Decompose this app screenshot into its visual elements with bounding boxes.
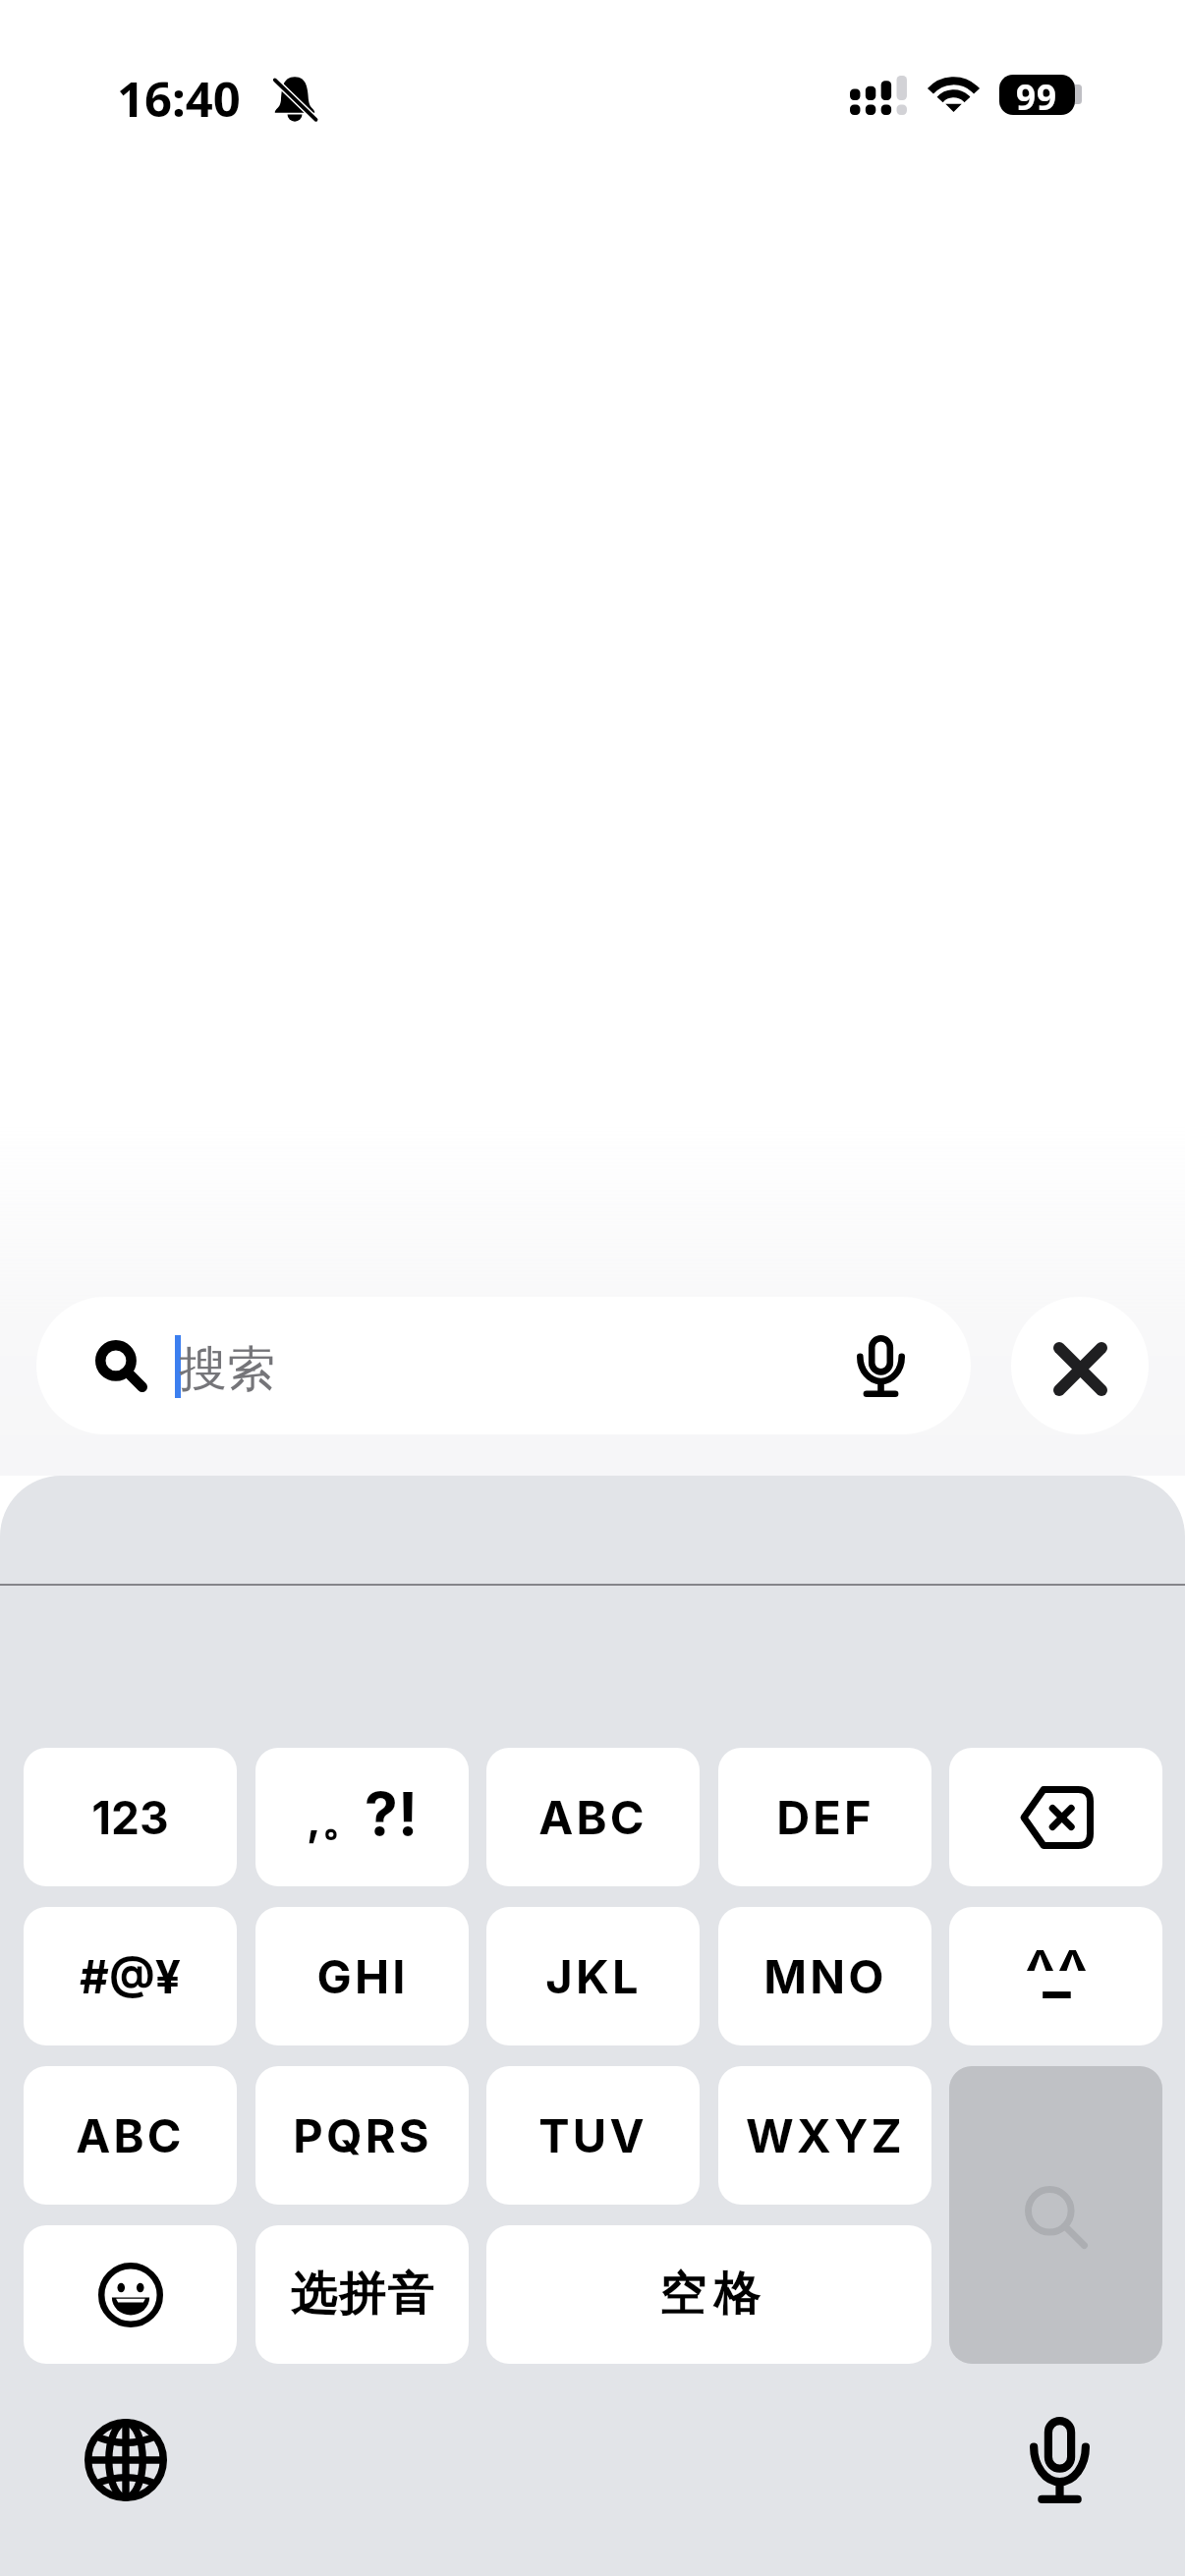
button[interactable]: Voice input <box>996 2397 1122 2523</box>
button[interactable]: PQRS <box>255 2066 469 2205</box>
button[interactable]: GHI <box>255 1907 469 2045</box>
staticText: ,。?! <box>307 1777 419 1850</box>
button[interactable]: Voice search <box>812 1297 949 1434</box>
staticText: MNO <box>763 1948 887 2004</box>
button[interactable]: MNO <box>718 1907 931 2045</box>
button[interactable]: DEF <box>718 1748 931 1886</box>
staticText: 选拼音 <box>290 2266 434 2324</box>
button[interactable]: #@¥ <box>24 1907 237 2045</box>
button[interactable]: JKL <box>486 1907 700 2045</box>
staticText: DEF <box>776 1789 875 1845</box>
staticText: 搜索 <box>179 1339 275 1400</box>
button[interactable]: 123 <box>24 1748 237 1886</box>
button[interactable]: 搜索 <box>36 1297 971 1434</box>
button[interactable]: 选拼音 <box>255 2225 469 2364</box>
staticText: 16:40 <box>117 66 241 132</box>
staticText: ABC <box>538 1789 648 1845</box>
button[interactable]: 空格 <box>486 2225 931 2364</box>
staticText: 99 <box>1016 75 1058 114</box>
staticText: WXYZ <box>746 2107 905 2163</box>
staticText: TUV <box>538 2107 648 2163</box>
button[interactable]: TUV <box>486 2066 700 2205</box>
staticText: JKL <box>545 1948 642 2004</box>
button[interactable]: ,。?! <box>255 1748 469 1886</box>
button[interactable]: ABC <box>486 1748 700 1886</box>
staticText: ABC <box>76 2107 185 2163</box>
staticText: 空格 <box>655 2266 763 2324</box>
button[interactable]: WXYZ <box>718 2066 931 2205</box>
button[interactable]: Switch keyboard <box>63 2397 189 2523</box>
staticText: PQRS <box>293 2107 432 2163</box>
staticText: GHI <box>316 1948 409 2004</box>
button[interactable]: ABC <box>24 2066 237 2205</box>
staticText: 123 <box>91 1790 169 1845</box>
staticText: #@¥ <box>80 1949 181 2004</box>
button[interactable] <box>949 1907 1162 2045</box>
button[interactable]: Emoji <box>24 2225 237 2364</box>
button[interactable]: Backspace <box>949 1748 1162 1886</box>
button[interactable]: Search <box>949 2066 1162 2364</box>
button[interactable]: Close <box>1011 1297 1149 1434</box>
